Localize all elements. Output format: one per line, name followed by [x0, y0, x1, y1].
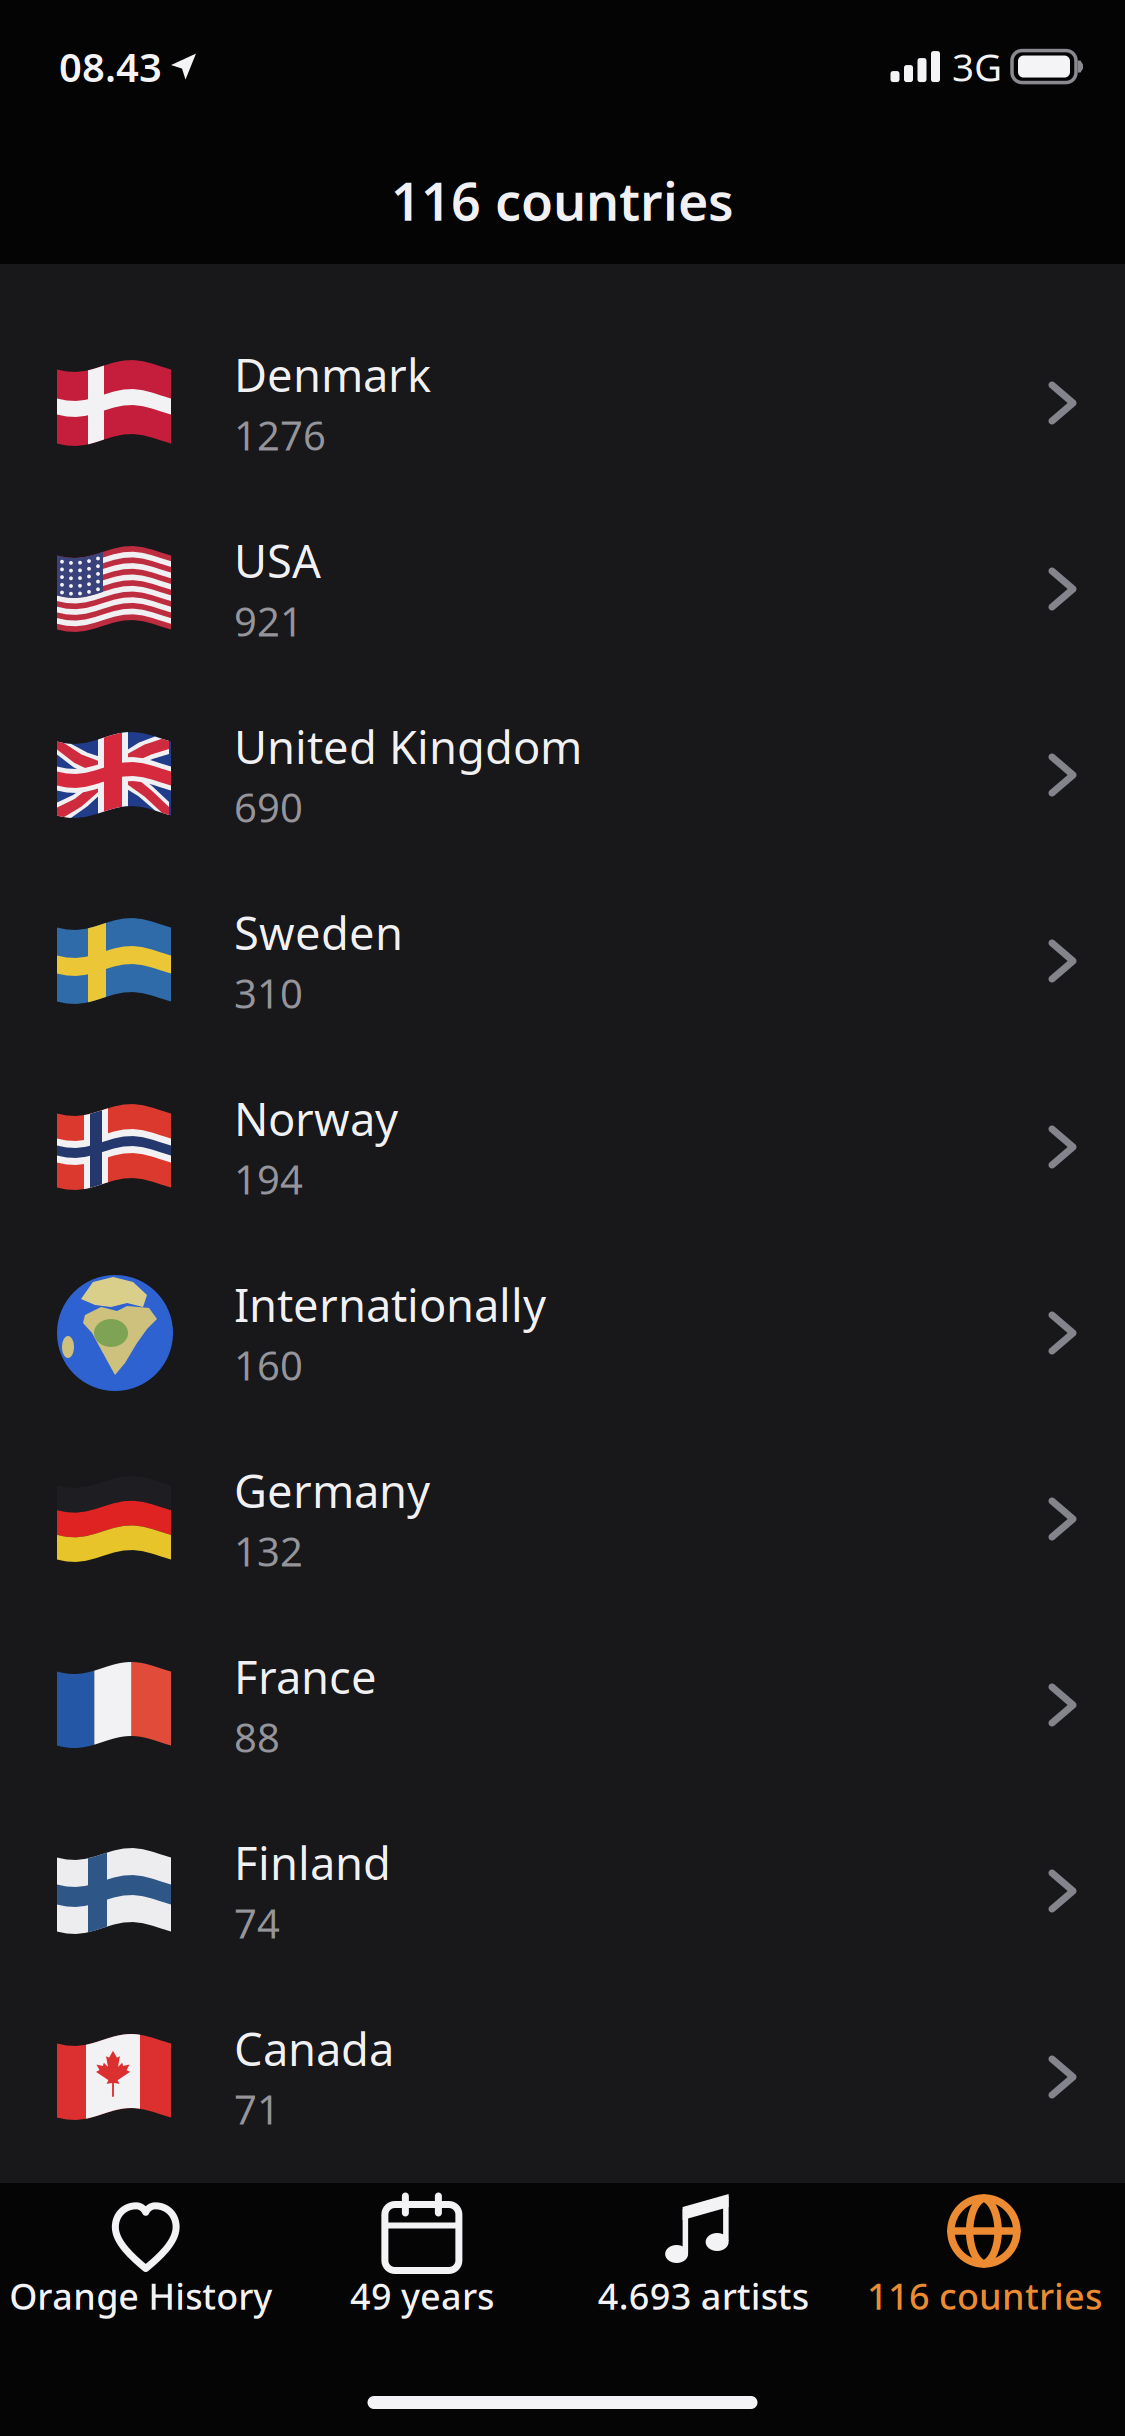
- button[interactable]: Internationally: [0, 1240, 1125, 1426]
- staticText: 74: [234, 1896, 280, 1950]
- staticText: France: [234, 1646, 377, 1706]
- button[interactable]: USA: [0, 496, 1125, 682]
- staticText: Orange History: [9, 2272, 272, 2320]
- button[interactable]: Sweden: [0, 868, 1125, 1054]
- staticText: Denmark: [234, 344, 431, 404]
- staticText: Norway: [234, 1088, 398, 1148]
- button[interactable]: 4.693 artists: [562, 2191, 844, 2320]
- staticText: 3G: [952, 41, 1002, 92]
- staticText: 4.693 artists: [598, 2272, 809, 2320]
- staticText: 690: [234, 780, 303, 834]
- staticText: 132: [234, 1524, 303, 1578]
- button[interactable]: 49 years: [281, 2191, 562, 2320]
- staticText: 49 years: [350, 2272, 494, 2320]
- staticText: 310: [234, 966, 303, 1020]
- button[interactable]: Canada: [0, 1984, 1125, 2170]
- staticText: Internationally: [234, 1274, 546, 1334]
- button[interactable]: Norway: [0, 1054, 1125, 1240]
- staticText: 08.43: [59, 40, 162, 93]
- staticText: 71: [234, 2082, 280, 2136]
- button[interactable]: United Kingdom: [0, 682, 1125, 868]
- staticText: 160: [234, 1338, 303, 1392]
- staticText: 1276: [234, 408, 326, 462]
- button[interactable]: 116 countries: [844, 2191, 1125, 2320]
- staticText: Germany: [234, 1460, 430, 1520]
- staticText: 116 countries: [867, 2272, 1102, 2320]
- button[interactable]: France: [0, 1612, 1125, 1798]
- button[interactable]: Finland: [0, 1798, 1125, 1984]
- staticText: 116 countries: [391, 166, 734, 235]
- staticText: 88: [234, 1710, 280, 1764]
- button[interactable]: Germany: [0, 1426, 1125, 1612]
- staticText: Finland: [234, 1832, 391, 1892]
- staticText: 194: [234, 1152, 303, 1206]
- button[interactable]: Denmark: [0, 310, 1125, 496]
- staticText: United Kingdom: [234, 716, 582, 776]
- staticText: USA: [234, 530, 321, 590]
- staticText: Sweden: [234, 902, 403, 962]
- button[interactable]: Orange History: [0, 2191, 281, 2320]
- staticText: 921: [234, 594, 303, 648]
- staticText: Canada: [234, 2018, 394, 2078]
